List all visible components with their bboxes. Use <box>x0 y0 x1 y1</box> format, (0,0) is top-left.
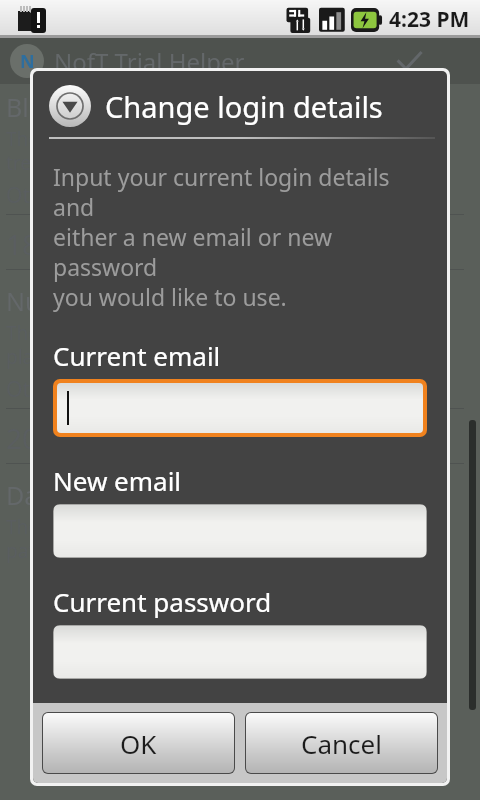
staticText: NofT Trial Helper <box>54 45 245 78</box>
staticText: 18 <box>6 225 39 263</box>
staticText: Nu <box>6 284 41 318</box>
staticText: Other <box>6 181 64 210</box>
button[interactable] <box>54 626 426 678</box>
staticText: The days on which it is necessary for th… <box>6 514 366 563</box>
staticText: Change login details <box>105 87 383 126</box>
button[interactable] <box>54 505 426 557</box>
staticText: 4:23 PM <box>389 5 470 34</box>
button[interactable] <box>57 383 423 433</box>
staticText: Cancel <box>301 726 382 761</box>
staticText: Blo <box>6 90 44 124</box>
staticText: The number of blocks of treatment that a… <box>6 320 393 369</box>
staticText: The number of days in a block that each … <box>6 126 363 175</box>
staticText: Current password <box>53 584 272 619</box>
staticText: Da <box>6 478 39 512</box>
staticText: Other <box>6 375 64 404</box>
staticText: N <box>20 49 35 74</box>
staticText: Current email <box>53 338 221 373</box>
staticText: OK <box>120 726 157 761</box>
staticText: New email <box>53 463 182 498</box>
button[interactable]: Cancel <box>246 713 437 773</box>
staticText: Input your current login details and eit… <box>53 161 427 312</box>
button[interactable]: OK <box>43 713 234 773</box>
staticText: 20 <box>6 419 39 457</box>
